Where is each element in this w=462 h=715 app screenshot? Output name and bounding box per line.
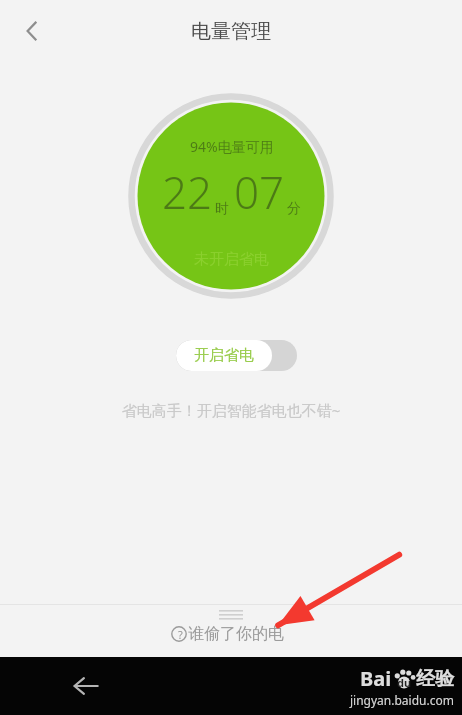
staticText: du [397, 675, 412, 690]
staticText: 省电高手！开启智能省电也不错~ [0, 400, 462, 420]
staticText: jingyan.baidu.com [350, 692, 454, 708]
staticText: 07 [234, 162, 285, 222]
staticText: Bai [360, 665, 392, 692]
staticText: 经验 [416, 667, 454, 691]
staticText: 未开启省电 [194, 250, 269, 269]
staticText: ? [178, 627, 183, 642]
staticText: 时 [215, 200, 229, 218]
staticText: 电量管理 [191, 19, 271, 44]
button[interactable]: Back [60, 660, 112, 712]
staticText: 开启省电 [194, 346, 254, 365]
button[interactable]: 开启省电 [176, 340, 297, 371]
button[interactable]: Back [6, 5, 58, 57]
staticText: 谁偷了你的电 [188, 624, 284, 644]
button[interactable]: ? [0, 604, 462, 644]
staticText: 94%电量可用 [190, 137, 274, 156]
staticText: 分 [287, 200, 301, 218]
staticText: 22 [162, 162, 213, 222]
